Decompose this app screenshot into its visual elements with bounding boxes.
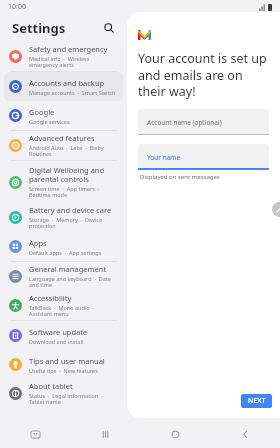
staticText: Accounts and backup: [29, 78, 105, 88]
staticText: Advanced features: [29, 133, 95, 143]
button[interactable]: General management: [4, 262, 123, 291]
button[interactable]: Search: [101, 20, 117, 36]
staticText: Your account is set up and emails are on…: [138, 50, 269, 99]
button[interactable]: Home: [140, 420, 210, 448]
button[interactable]: Accounts and backup: [4, 72, 123, 101]
staticText: General management: [29, 264, 107, 274]
staticText: About tablet: [29, 381, 73, 391]
staticText: Displayed on sent messages: [140, 173, 220, 181]
button[interactable]: Digital Wellbeing and parental controls: [4, 161, 123, 203]
button[interactable]: Advanced features: [4, 131, 123, 160]
staticText: Useful tips · New features: [29, 367, 98, 374]
staticText: Tips and user manual: [29, 356, 105, 366]
button[interactable]: Accessibility: [4, 291, 123, 320]
button[interactable]: About tablet: [4, 379, 123, 408]
button[interactable]: Account name (optional): [138, 109, 269, 135]
button[interactable]: Google: [4, 101, 123, 130]
staticText: Android Auto · Labs · Bixby Routines: [29, 144, 118, 158]
staticText: Google services: [29, 118, 70, 125]
staticText: Medical info · Wireless emergency alerts: [29, 55, 118, 69]
staticText: Screen time · App timers · Bedtime mode: [29, 185, 118, 199]
staticText: Account name (optional): [147, 118, 222, 127]
button[interactable]: Your name: [138, 144, 269, 170]
staticText: Language and keyboard · Date and time: [29, 275, 118, 289]
button[interactable]: NEXT: [241, 394, 272, 408]
button[interactable]: Apps: [4, 232, 123, 261]
staticText: NEXT: [248, 396, 266, 406]
button[interactable]: Tips and user manual: [4, 350, 123, 379]
staticText: Apps: [29, 238, 47, 248]
button[interactable]: Safety and emergency: [4, 42, 123, 71]
staticText: Safety and emergency: [29, 44, 108, 54]
staticText: Default apps · App settings: [29, 249, 102, 256]
staticText: Google: [29, 107, 55, 117]
staticText: Accessibility: [29, 293, 72, 303]
staticText: 10:00: [8, 2, 26, 12]
staticText: Storage · Memory · Device protection: [29, 216, 118, 230]
staticText: Your name: [147, 153, 181, 162]
staticText: Manage accounts · Smart Switch: [29, 89, 116, 96]
button[interactable]: Software update: [4, 321, 123, 350]
button[interactable]: Recents: [70, 420, 140, 448]
staticText: Status · Legal information · Tablet name: [29, 392, 118, 406]
staticText: Battery and device care: [29, 205, 112, 215]
staticText: Software update: [29, 327, 88, 337]
button[interactable]: Back: [210, 420, 280, 448]
button[interactable]: Battery and device care: [4, 203, 123, 232]
staticText: TalkBack · Mono audio · Assistant menu: [29, 304, 118, 318]
staticText: Settings: [12, 19, 66, 37]
button[interactable]: Keyboard: [0, 420, 70, 448]
staticText: Digital Wellbeing and parental controls: [29, 165, 118, 184]
staticText: Download and install: [29, 338, 84, 345]
button[interactable]: Compose: [272, 202, 280, 217]
